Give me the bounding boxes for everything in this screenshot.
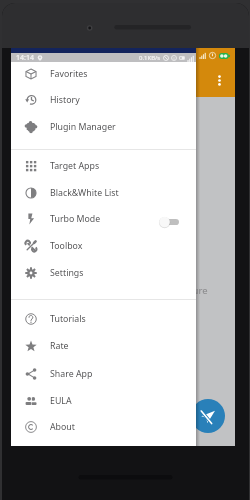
staticText: Tutorials	[50, 313, 86, 325]
button[interactable]: History	[11, 87, 196, 113]
staticText: Settings	[50, 267, 84, 279]
staticText: Favorites	[50, 68, 88, 80]
staticText: History	[50, 94, 80, 106]
staticText: About	[50, 421, 75, 433]
button[interactable]: Disconnect	[191, 399, 225, 433]
staticText: EULA	[50, 395, 72, 407]
button[interactable]: Rate	[11, 333, 196, 359]
button[interactable]: Plugin Manager	[11, 114, 196, 140]
staticText: 14:14	[16, 53, 34, 62]
button[interactable]: Black&White List	[11, 180, 196, 206]
button[interactable]: Share App	[11, 361, 196, 387]
button[interactable]: Turbo Mode	[11, 206, 196, 232]
button[interactable]: Target Apps	[11, 153, 196, 179]
button[interactable]: About	[11, 414, 196, 440]
staticText: Plugin Manager	[50, 121, 116, 133]
button[interactable]: EULA	[11, 388, 196, 414]
staticText: 0.1KB/s	[139, 54, 161, 62]
button[interactable]: Settings	[11, 260, 196, 286]
staticText: Toolbox	[50, 240, 83, 252]
button[interactable]: Favorites	[11, 61, 196, 87]
staticText: Rate	[50, 340, 69, 352]
button[interactable]: More options	[210, 71, 228, 89]
staticText: No rule yet, tap + to configure	[74, 284, 208, 297]
staticText: Share App	[50, 368, 93, 380]
staticText: Target Apps	[50, 160, 100, 172]
button[interactable]: Sort	[12, 71, 30, 89]
button[interactable]: Tutorials	[11, 306, 196, 332]
button[interactable]: Toolbox	[11, 233, 196, 259]
staticText: Turbo Mode	[50, 213, 101, 225]
staticText: Black&White List	[50, 187, 119, 199]
